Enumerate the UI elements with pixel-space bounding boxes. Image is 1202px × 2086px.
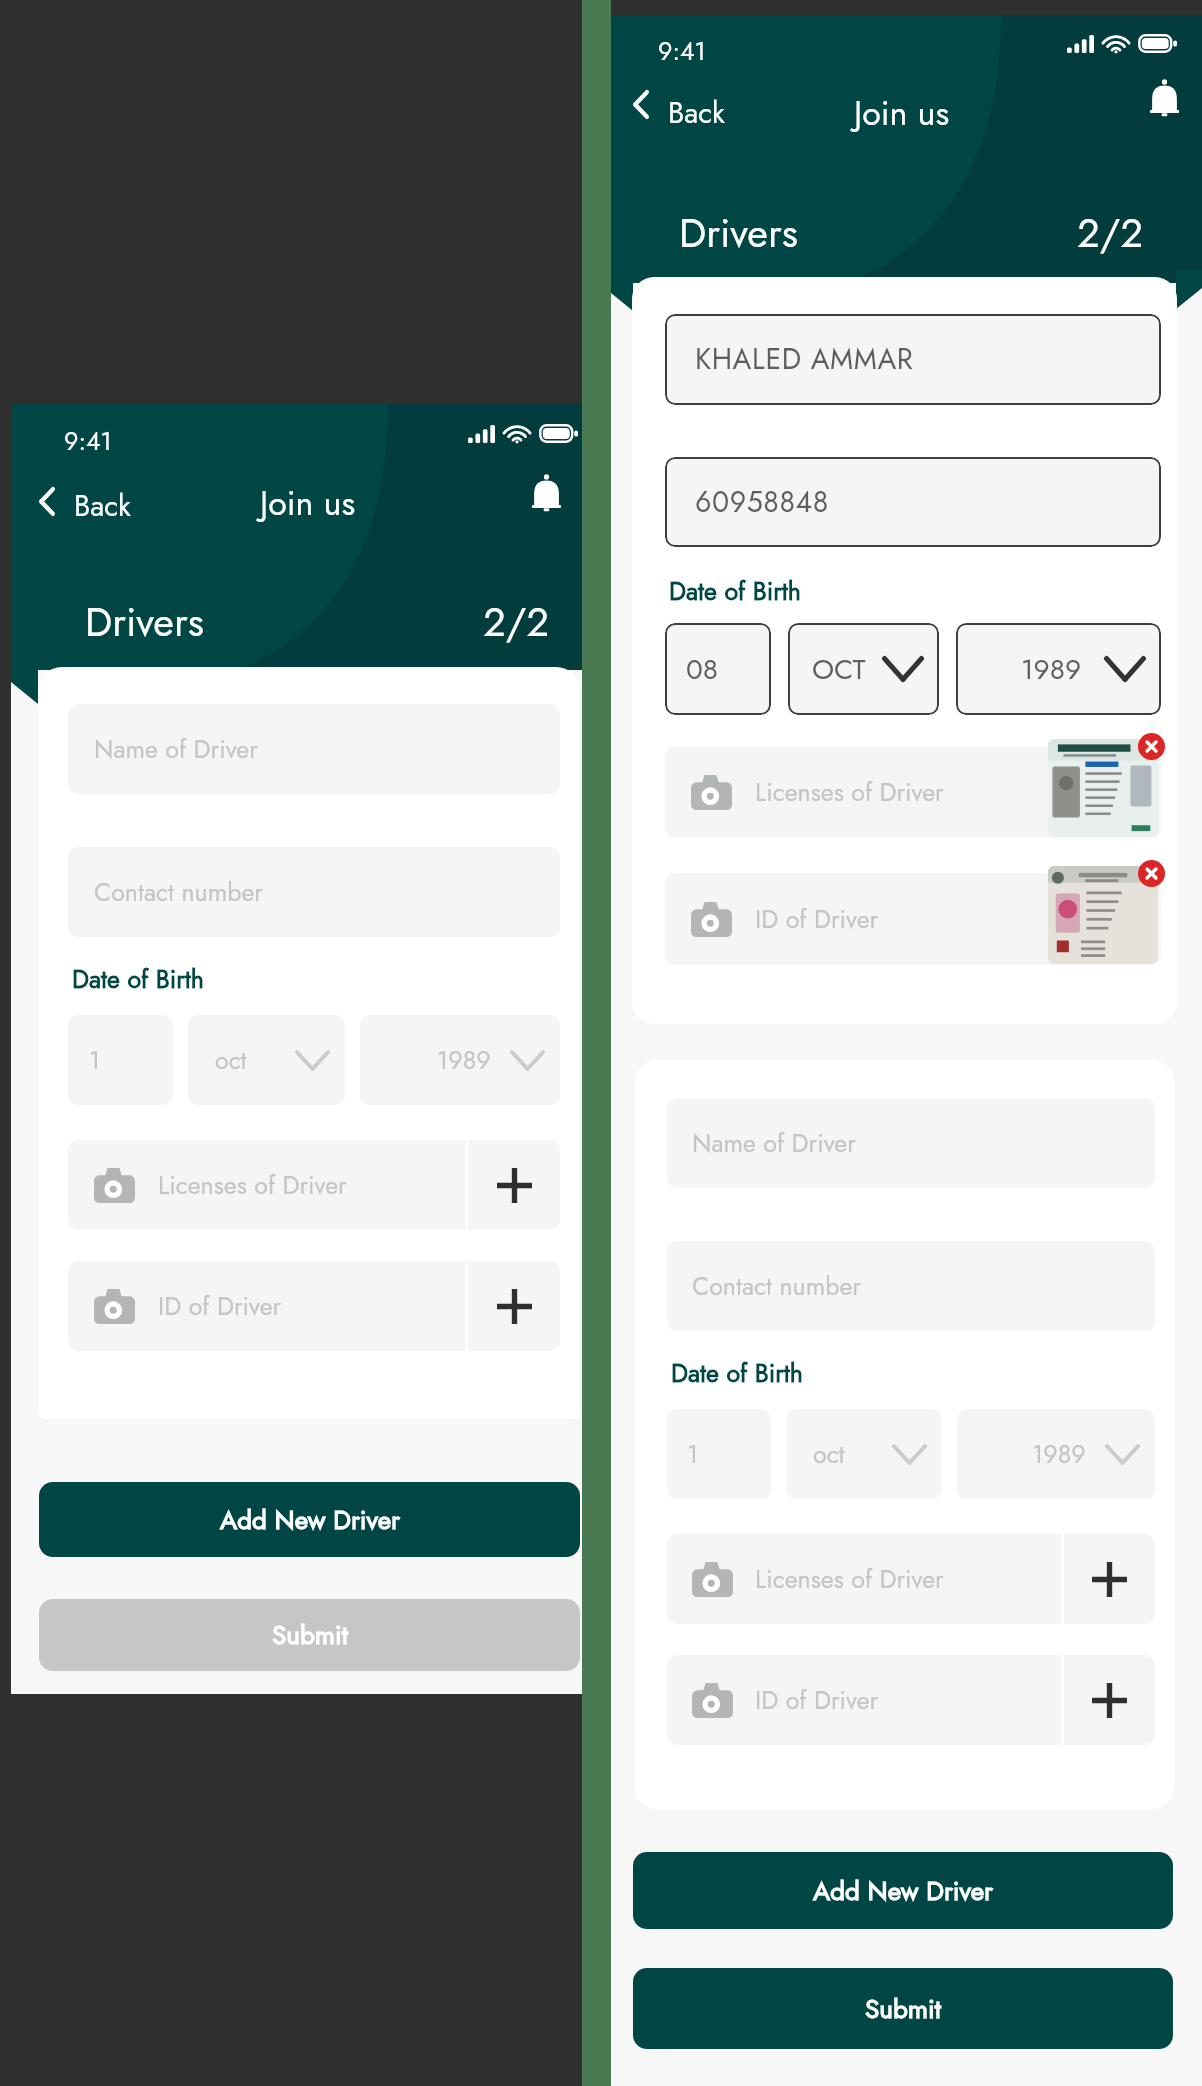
staticText: Date of Birth (669, 573, 801, 609)
staticText: Submit (272, 1616, 348, 1654)
button[interactable]: ID of Driver (667, 1655, 1062, 1745)
staticText: Contact number (94, 874, 263, 910)
staticText: Contact number (692, 1268, 861, 1304)
staticText: 1989 (1032, 1436, 1086, 1472)
button[interactable]: Licenses of Driver photo (1048, 739, 1158, 837)
staticText: oct (215, 1042, 247, 1078)
staticText: Date of Birth (72, 961, 204, 997)
button[interactable]: Add ID of Driver (468, 1261, 560, 1351)
button[interactable]: 1 (68, 1015, 173, 1105)
staticText: Licenses of Driver (755, 1561, 944, 1597)
staticText: 1989 (1021, 649, 1082, 689)
button[interactable]: ID of Driver photo (1048, 866, 1158, 964)
button[interactable]: Add ID of Driver (1064, 1655, 1155, 1745)
staticText: Back (74, 485, 131, 527)
button[interactable]: Licenses of Driver (667, 1534, 1062, 1624)
button[interactable]: oct (188, 1015, 345, 1105)
button[interactable]: OCT (788, 623, 939, 715)
staticText: 60958848 (695, 482, 829, 523)
button[interactable]: Remove ID of Driver (1138, 860, 1165, 887)
button[interactable]: Add Licenses of Driver (1064, 1534, 1155, 1624)
button[interactable]: Submit (633, 1968, 1173, 2049)
staticText: Join us (854, 89, 950, 138)
staticText: 2/2 (1077, 204, 1144, 262)
button[interactable]: 08 (665, 623, 771, 715)
button[interactable]: Licenses of Driver (68, 1140, 466, 1230)
button[interactable]: Add New Driver (633, 1852, 1173, 1929)
button[interactable]: Contact number (667, 1241, 1155, 1331)
staticText: Licenses of Driver (158, 1167, 347, 1203)
button[interactable]: Notifications (1141, 71, 1188, 127)
staticText: 9:41 (64, 423, 112, 459)
button[interactable]: ID of Driver (665, 873, 1161, 965)
staticText: 1 (687, 1436, 699, 1472)
button[interactable]: Notifications (523, 466, 570, 522)
button[interactable]: Remove Licenses of Driver (1138, 733, 1165, 760)
button[interactable]: oct (786, 1409, 942, 1499)
staticText: Submit (865, 1990, 941, 2028)
button[interactable]: Contact number (68, 847, 560, 937)
button[interactable]: 1989 (360, 1015, 560, 1105)
staticText: Join us (260, 479, 356, 528)
button[interactable]: 1989 (956, 623, 1161, 715)
staticText: OCT (812, 649, 866, 689)
button[interactable]: KHALED AMMAR (665, 314, 1161, 405)
button[interactable]: 1 (667, 1409, 771, 1499)
staticText: 1 (89, 1042, 101, 1078)
button[interactable]: Add New Driver (39, 1482, 580, 1557)
staticText: Drivers (85, 593, 204, 651)
staticText: 1989 (437, 1042, 491, 1078)
button[interactable]: Name of Driver (68, 704, 560, 794)
button[interactable]: Submit (39, 1599, 580, 1671)
button[interactable]: Add Licenses of Driver (468, 1140, 560, 1230)
staticText: Add New Driver (220, 1501, 400, 1539)
staticText: Drivers (679, 204, 798, 262)
button[interactable]: Back (31, 472, 139, 530)
button[interactable]: Back (625, 75, 733, 133)
button[interactable]: 60958848 (665, 457, 1161, 547)
button[interactable]: Name of Driver (667, 1098, 1155, 1188)
staticText: Back (668, 92, 725, 134)
staticText: Add New Driver (813, 1872, 993, 1910)
staticText: ID of Driver (755, 901, 879, 937)
staticText: oct (813, 1436, 845, 1472)
button[interactable]: Licenses of Driver (665, 746, 1161, 838)
button[interactable]: ID of Driver (68, 1261, 466, 1351)
staticText: 9:41 (658, 33, 706, 69)
staticText: Name of Driver (94, 731, 258, 767)
staticText: ID of Driver (755, 1682, 879, 1718)
staticText: KHALED AMMAR (695, 339, 914, 380)
staticText: 08 (686, 649, 719, 689)
staticText: Date of Birth (671, 1355, 803, 1391)
button[interactable]: 1989 (957, 1409, 1155, 1499)
staticText: Licenses of Driver (755, 774, 944, 810)
staticText: ID of Driver (158, 1288, 282, 1324)
staticText: Name of Driver (692, 1125, 856, 1161)
staticText: 2/2 (483, 593, 550, 651)
